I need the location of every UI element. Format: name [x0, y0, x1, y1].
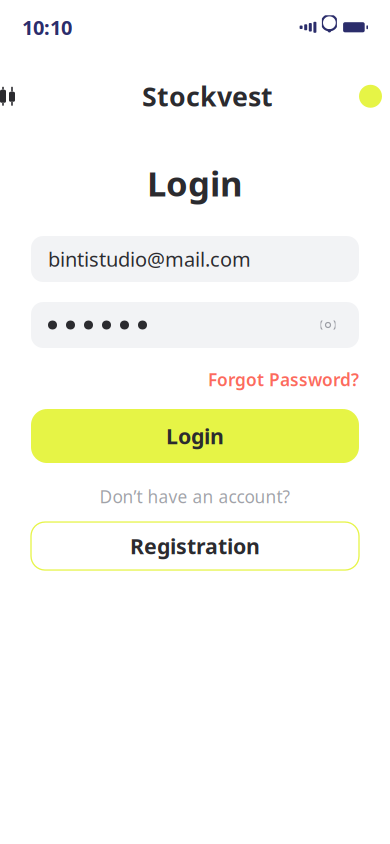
- staticText: bintistudio@mail.com: [48, 246, 251, 272]
- staticText: Stockvest: [142, 79, 273, 114]
- staticText: 10:10: [22, 14, 72, 41]
- button[interactable]: Show password: [314, 311, 342, 339]
- staticText: Forgot Password?: [208, 368, 359, 391]
- staticText: Registration: [130, 532, 260, 560]
- staticText: Login: [166, 422, 224, 450]
- button[interactable]: Forgot Password?: [208, 368, 359, 391]
- staticText: Login: [147, 160, 243, 206]
- staticText: Don’t have an account?: [99, 485, 290, 508]
- button[interactable]: Registration: [31, 522, 359, 570]
- button[interactable]: Login: [31, 409, 359, 463]
